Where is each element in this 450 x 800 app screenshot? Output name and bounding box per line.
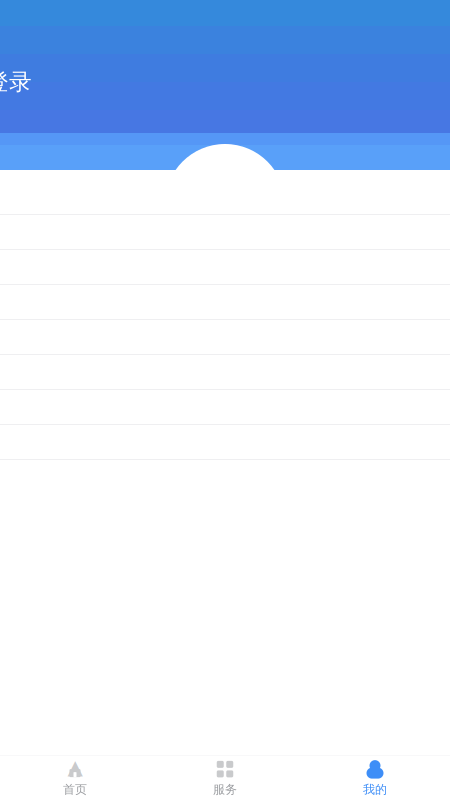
staticText: 我的 (363, 782, 387, 797)
staticText: 服务 (213, 782, 237, 797)
staticText: 首页 (63, 782, 87, 797)
button[interactable]: 我的 (300, 755, 450, 800)
staticText: ▲ (67, 756, 82, 778)
button[interactable]: 服务 (150, 755, 300, 800)
staticText: 请登录 (0, 68, 32, 96)
button[interactable]: ▲ (0, 755, 150, 800)
